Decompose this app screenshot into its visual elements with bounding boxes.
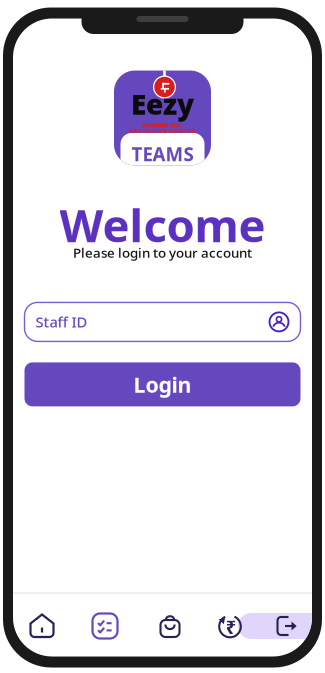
staticText: EXECUTIVE CHAIRS bbox=[129, 127, 195, 135]
button[interactable]: Login bbox=[24, 362, 300, 406]
staticText: Login bbox=[133, 370, 191, 398]
staticText: Please login to your account bbox=[73, 244, 252, 261]
staticText: Welcome bbox=[59, 194, 265, 255]
button[interactable]: Home bbox=[20, 606, 64, 646]
staticText: BOMBAY DX. bbox=[142, 121, 183, 129]
button[interactable]: Tasks bbox=[83, 606, 127, 646]
button[interactable]: Orders bbox=[148, 606, 192, 646]
button[interactable]: Logout bbox=[238, 613, 325, 639]
staticText: TEAMS bbox=[131, 142, 193, 166]
button[interactable]: Payments bbox=[208, 606, 252, 646]
staticText: Staff ID bbox=[35, 312, 87, 332]
staticText: ₹ bbox=[225, 615, 236, 639]
staticText: Eezy bbox=[131, 85, 194, 123]
